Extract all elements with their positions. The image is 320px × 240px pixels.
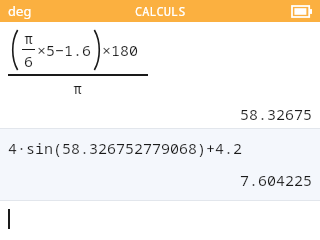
staticText: ×180 xyxy=(102,40,139,60)
staticText: CALCULS xyxy=(135,3,186,19)
staticText: π xyxy=(24,28,34,48)
staticText: 58.32675 xyxy=(0,104,312,124)
staticText: 4·sin(58.326752779068)+4.2 xyxy=(8,138,243,158)
staticText: 7.604225 xyxy=(0,170,312,190)
other: Battery xyxy=(292,6,312,17)
staticText: π xyxy=(73,78,83,98)
button[interactable] xyxy=(0,201,320,240)
staticText: 6 xyxy=(24,51,34,71)
button[interactable]: deg xyxy=(8,2,32,20)
button[interactable]: 4·sin(58.326752779068)+4.2 xyxy=(0,129,320,200)
staticText: ×5−1.6 xyxy=(37,40,92,60)
button[interactable]: π xyxy=(0,22,320,128)
